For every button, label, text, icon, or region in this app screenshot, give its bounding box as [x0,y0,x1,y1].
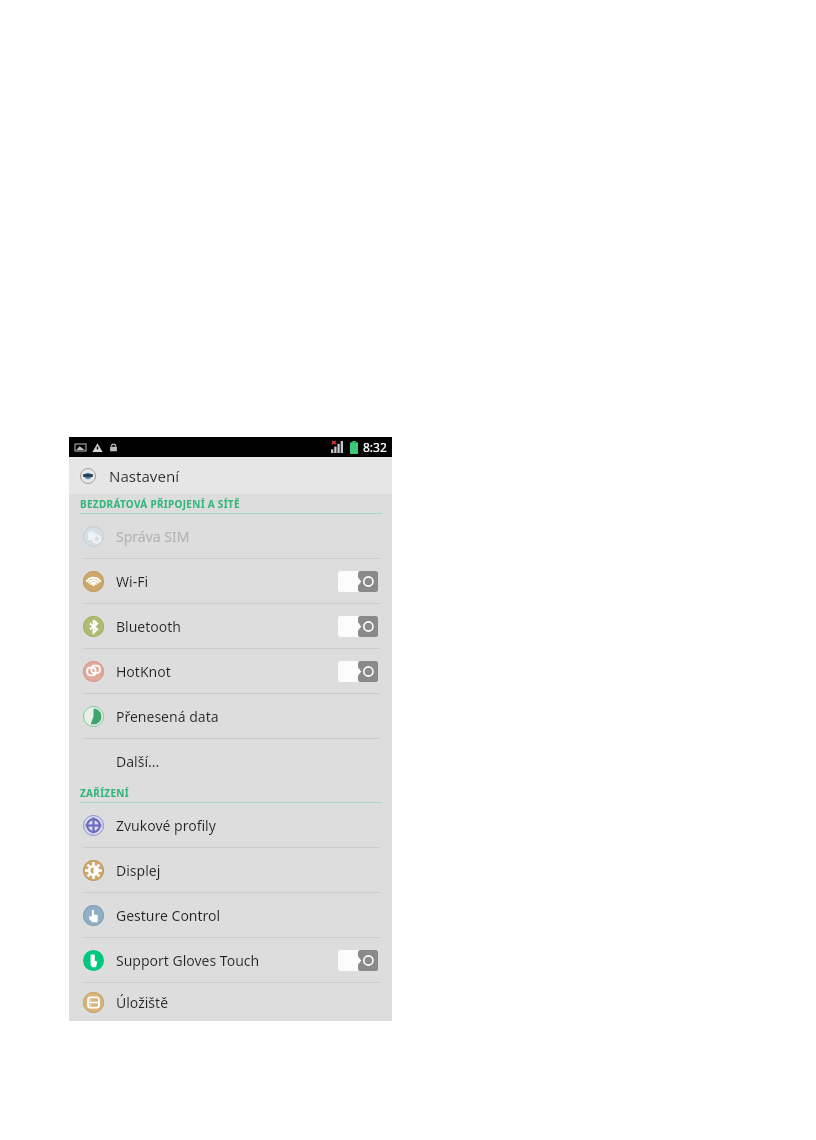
button[interactable]: Toggle [338,950,378,971]
button[interactable]: HotKnot [69,649,392,693]
staticText: HotKnot [116,662,171,681]
staticText: Wi-Fi [116,572,149,591]
staticText: 8:32 [363,439,387,455]
button[interactable]: Gesture Control [69,893,392,937]
button[interactable]: Displej [69,848,392,892]
button[interactable]: Další... [69,739,392,783]
button[interactable]: Úložiště [69,983,392,1021]
staticText: Zvukové profily [116,816,216,835]
button[interactable]: Bluetooth [69,604,392,648]
staticText: ZAŘÍZENÍ [80,786,129,800]
button[interactable]: Zvukové profily [69,803,392,847]
staticText: Přenesená data [116,707,219,726]
staticText: Displej [116,861,161,880]
staticText: Gesture Control [116,906,221,925]
staticText: Support Gloves Touch [116,951,260,970]
staticText: Nastavení [109,466,180,486]
button[interactable]: Wi-Fi [69,559,392,603]
staticText: Další... [116,752,160,771]
staticText: Úložiště [116,993,169,1012]
button[interactable]: Toggle [338,661,378,682]
button[interactable]: Support Gloves Touch [69,938,392,982]
button[interactable]: Nastavení [69,457,392,494]
staticText: Správa SIM [116,527,190,546]
button[interactable]: Toggle [338,571,378,592]
staticText: Bluetooth [116,617,181,636]
staticText: BEZDRÁTOVÁ PŘIPOJENÍ A SÍTĚ [80,497,240,511]
button[interactable]: Správa SIM [69,514,392,558]
button[interactable]: Přenesená data [69,694,392,738]
button[interactable]: Toggle [338,616,378,637]
